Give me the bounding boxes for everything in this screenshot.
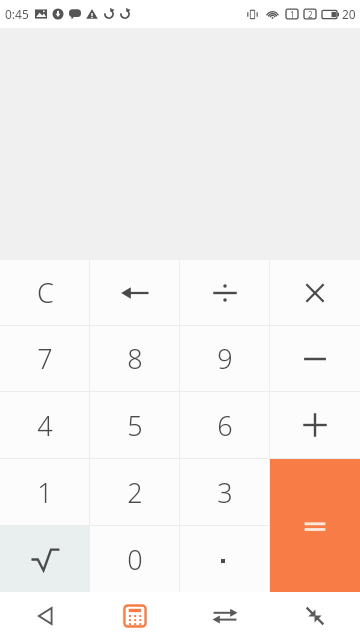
staticText: 3 bbox=[217, 474, 233, 511]
button[interactable]: Back bbox=[0, 592, 90, 640]
button[interactable]: 6 bbox=[180, 392, 270, 458]
staticText: 4 bbox=[37, 407, 53, 444]
button[interactable]: 5 bbox=[90, 392, 180, 458]
staticText: 7 bbox=[37, 340, 53, 377]
button[interactable]: Collapse bbox=[270, 592, 360, 640]
button[interactable]: 8 bbox=[90, 326, 180, 391]
button[interactable]: C bbox=[0, 260, 90, 325]
staticText: 20 bbox=[342, 6, 356, 22]
button[interactable]: 9 bbox=[180, 326, 270, 391]
button[interactable]: Multiply bbox=[270, 260, 360, 325]
button[interactable]: Divide bbox=[180, 260, 270, 325]
button[interactable]: Backspace bbox=[90, 260, 180, 325]
staticText: 0 bbox=[127, 541, 143, 578]
button[interactable]: Swap bbox=[180, 592, 270, 640]
button[interactable]: 1 bbox=[0, 459, 90, 525]
staticText: 2 bbox=[127, 474, 143, 511]
button[interactable]: Minus bbox=[270, 326, 360, 391]
staticText: 8 bbox=[127, 340, 143, 377]
button[interactable]: 3 bbox=[180, 459, 270, 525]
staticText: 9 bbox=[217, 340, 233, 377]
staticText: 6 bbox=[217, 407, 233, 444]
staticText: 1 bbox=[37, 474, 53, 511]
button[interactable]: Calculator bbox=[90, 592, 180, 640]
staticText: 5 bbox=[127, 407, 143, 444]
button[interactable]: Decimal point bbox=[180, 526, 270, 592]
button[interactable]: Equals bbox=[270, 459, 360, 592]
staticText: 2 bbox=[308, 9, 313, 20]
button[interactable]: 4 bbox=[0, 392, 90, 458]
staticText: 0:45 bbox=[5, 6, 29, 22]
button[interactable]: 0 bbox=[90, 526, 180, 592]
button[interactable]: 7 bbox=[0, 326, 90, 391]
staticText: 1 bbox=[290, 9, 295, 20]
button[interactable]: Plus bbox=[270, 392, 360, 458]
staticText: C bbox=[37, 274, 54, 311]
button[interactable]: 2 bbox=[90, 459, 180, 525]
button[interactable]: Square root bbox=[0, 526, 90, 592]
